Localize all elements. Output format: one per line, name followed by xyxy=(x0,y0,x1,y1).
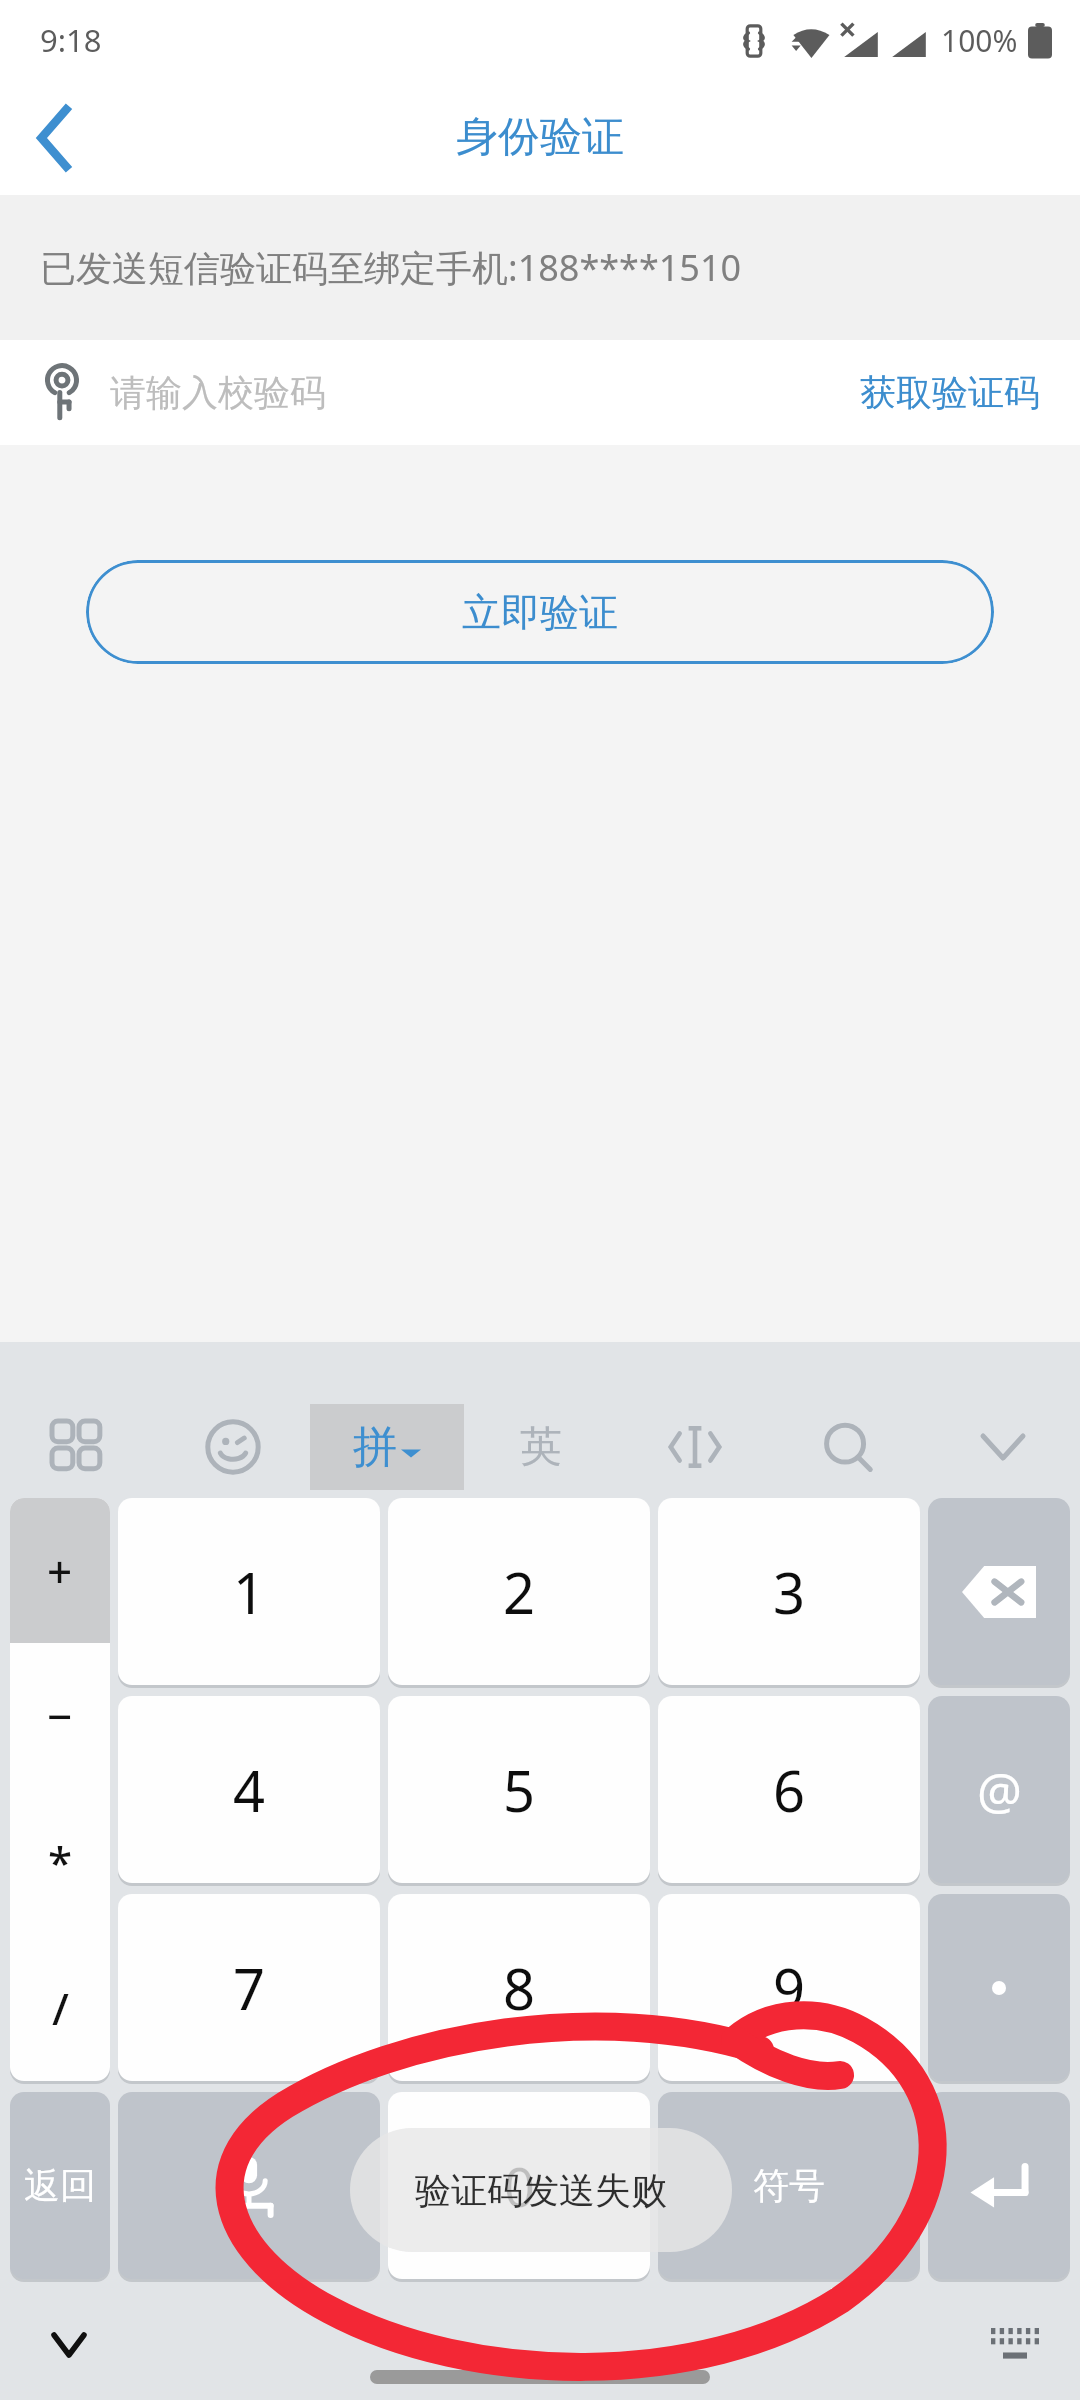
staticText: @ xyxy=(977,1756,1022,1824)
staticText: 2 xyxy=(503,1554,536,1630)
staticText: 验证码发送失败 xyxy=(415,2168,667,2213)
staticText: 7 xyxy=(233,1950,266,2026)
staticText: 请输入校验码 xyxy=(110,370,326,415)
other: Voice input xyxy=(222,2153,276,2219)
staticText: 已发送短信验证码至绑定手机:188****1510 xyxy=(40,243,742,292)
button[interactable]: 5 xyxy=(388,1696,650,1883)
staticText: * xyxy=(48,1832,73,1892)
staticText: 100% xyxy=(941,20,1018,61)
staticText: 9 xyxy=(773,1950,806,2026)
staticText: 英 xyxy=(520,1421,562,1474)
button[interactable]: 1 xyxy=(118,1498,380,1685)
staticText: − xyxy=(47,1686,73,1746)
button[interactable]: Enter xyxy=(928,2092,1070,2279)
button[interactable]: 请输入校验码 xyxy=(110,340,854,445)
button[interactable]: 8 xyxy=(388,1894,650,2081)
other: Move cursor xyxy=(663,1421,727,1473)
button[interactable]: Move cursor xyxy=(618,1404,772,1490)
button[interactable] xyxy=(928,1894,1070,2081)
button[interactable]: Voice input xyxy=(118,2092,380,2279)
other: Keyboard layouts xyxy=(52,1421,104,1473)
button[interactable]: 7 xyxy=(118,1894,380,2081)
staticText: 身份验证 xyxy=(456,111,624,164)
staticText: 8 xyxy=(503,1950,536,2026)
staticText: + xyxy=(47,1541,73,1601)
other: Emoji xyxy=(205,1419,261,1475)
other: Enter xyxy=(968,2159,1030,2213)
button[interactable]: 6 xyxy=(658,1696,920,1883)
button[interactable]: Search xyxy=(772,1404,926,1490)
staticText: 9:18 xyxy=(40,19,102,61)
button[interactable]: 拼 xyxy=(310,1404,464,1490)
staticText: 0 xyxy=(504,2149,535,2223)
button[interactable]: 0 xyxy=(388,2092,650,2279)
staticText: 返回 xyxy=(24,2163,96,2208)
button[interactable]: 立即验证 xyxy=(86,560,994,664)
button[interactable]: * xyxy=(10,1789,110,1935)
button[interactable]: Backspace xyxy=(928,1498,1070,1685)
staticText: 4 xyxy=(233,1752,266,1828)
staticText: 获取验证码 xyxy=(860,370,1040,415)
staticText: 5 xyxy=(503,1752,536,1828)
button[interactable]: Keyboard layouts xyxy=(0,1404,155,1490)
button[interactable]: 2 xyxy=(388,1498,650,1685)
button[interactable]: + xyxy=(10,1498,110,1643)
staticText: 立即验证 xyxy=(462,588,618,637)
button[interactable]: 符号 xyxy=(658,2092,920,2279)
button[interactable]: Back xyxy=(0,83,110,193)
other: Backspace xyxy=(962,1566,1036,1618)
button[interactable]: − xyxy=(10,1643,110,1789)
staticText: 符号 xyxy=(753,2163,825,2208)
button[interactable]: Hide keyboard xyxy=(34,2310,104,2380)
button[interactable] xyxy=(926,1404,1080,1490)
button[interactable]: 3 xyxy=(658,1498,920,1685)
button[interactable]: 英 xyxy=(464,1404,618,1490)
button[interactable]: 4 xyxy=(118,1696,380,1883)
staticText: 拼 xyxy=(353,1420,397,1475)
button[interactable]: 获取验证码 xyxy=(854,340,1046,445)
staticText: 1 xyxy=(233,1554,266,1630)
button[interactable]: @ xyxy=(928,1696,1070,1883)
button[interactable]: 9 xyxy=(658,1894,920,2081)
staticText: / xyxy=(52,1978,69,2038)
staticText: 6 xyxy=(773,1752,806,1828)
button[interactable]: Switch keyboard xyxy=(978,2308,1052,2382)
button[interactable]: Emoji xyxy=(155,1404,310,1490)
button[interactable]: / xyxy=(10,1935,110,2081)
staticText: 3 xyxy=(773,1554,806,1630)
button[interactable]: 返回 xyxy=(10,2092,110,2279)
other: Search xyxy=(821,1419,877,1475)
